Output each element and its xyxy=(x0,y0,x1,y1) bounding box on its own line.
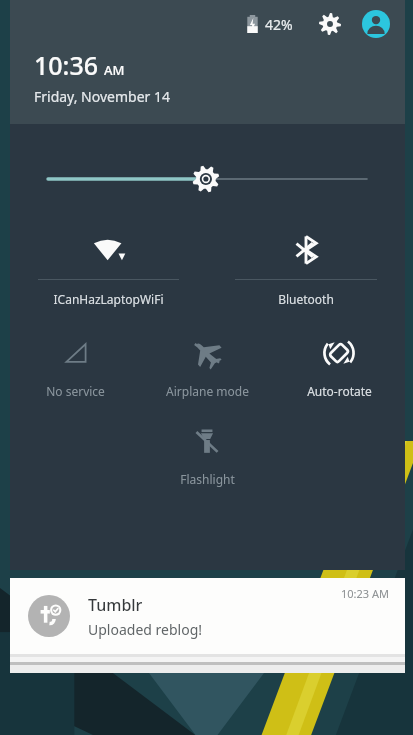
staticText: 42% xyxy=(265,15,293,34)
staticText: Uploaded reblog! xyxy=(88,620,203,639)
staticText: No service xyxy=(46,383,105,399)
staticText: Auto-rotate xyxy=(307,383,372,399)
staticText: ICanHazLaptopWiFi xyxy=(53,291,164,307)
staticText: Airplane mode xyxy=(166,383,249,399)
staticText: Tumblr xyxy=(88,594,143,616)
staticText: 10:23 AM xyxy=(341,586,389,601)
button[interactable]: Tumblr xyxy=(10,578,405,654)
button[interactable]: Brightness xyxy=(48,162,367,196)
button[interactable]: ICanHazLaptopWiFi xyxy=(10,230,207,307)
staticText: Flashlight xyxy=(180,471,235,487)
button[interactable]: Auto-rotate xyxy=(273,333,405,399)
button[interactable]: Flashlight xyxy=(141,421,273,487)
staticText: 10:36 xyxy=(34,48,99,82)
staticText: AM xyxy=(104,61,125,79)
staticText: Bluetooth xyxy=(278,291,334,307)
button[interactable]: Bluetooth xyxy=(207,230,405,307)
button[interactable]: Airplane mode xyxy=(141,333,273,399)
staticText: Friday, November 14 xyxy=(34,87,170,106)
button[interactable]: No service xyxy=(10,333,141,399)
button[interactable]: User profile xyxy=(361,9,391,39)
button[interactable]: Settings xyxy=(315,9,345,39)
